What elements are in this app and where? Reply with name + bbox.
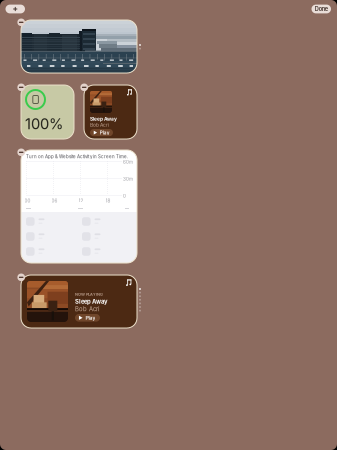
staticText: Play — [85, 315, 95, 321]
button[interactable]: Turn on App & Website Activity in Screen… — [21, 150, 137, 263]
staticText: Bob Acri — [75, 305, 99, 313]
staticText: Done — [315, 6, 328, 12]
staticText: Sleep Away — [90, 116, 117, 122]
button[interactable]: 100% — [21, 85, 74, 139]
button[interactable]: Remove widget — [17, 83, 25, 91]
button[interactable]: Play — [75, 314, 100, 322]
button[interactable]: Add widget — [5, 5, 25, 13]
staticText: 100% — [25, 115, 63, 133]
staticText: NOW PLAYING — [75, 292, 103, 297]
button[interactable]: Remove widget — [80, 83, 88, 91]
staticText: Play — [100, 130, 110, 135]
staticText: 60m — [123, 159, 133, 165]
staticText: Bob Acri — [90, 122, 109, 128]
button[interactable]: Remove widget — [17, 273, 25, 281]
staticText: 12 — [78, 198, 83, 203]
staticText: 30m — [123, 176, 133, 182]
button[interactable]: Play — [90, 129, 113, 136]
button[interactable] — [21, 20, 137, 73]
button[interactable]: Done — [311, 5, 331, 13]
button[interactable]: NOW PLAYING — [21, 275, 137, 328]
staticText: 18 — [105, 198, 110, 203]
staticText: Turn on App & Website Activity in Screen… — [26, 154, 128, 159]
button[interactable]: Remove widget — [17, 18, 25, 26]
button[interactable]: Sleep Away — [84, 85, 137, 139]
staticText: Sleep Away — [75, 298, 108, 305]
staticText: 0 — [123, 193, 126, 199]
staticText: 00 — [24, 198, 30, 203]
staticText: 06 — [51, 198, 57, 203]
button[interactable]: Remove widget — [17, 148, 25, 156]
